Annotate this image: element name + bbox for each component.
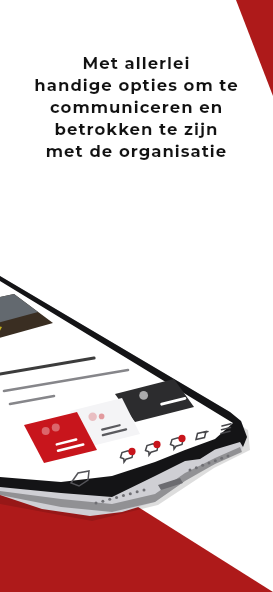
staticText: Met allerlei handige opties om te commun…: [0, 53, 273, 162]
